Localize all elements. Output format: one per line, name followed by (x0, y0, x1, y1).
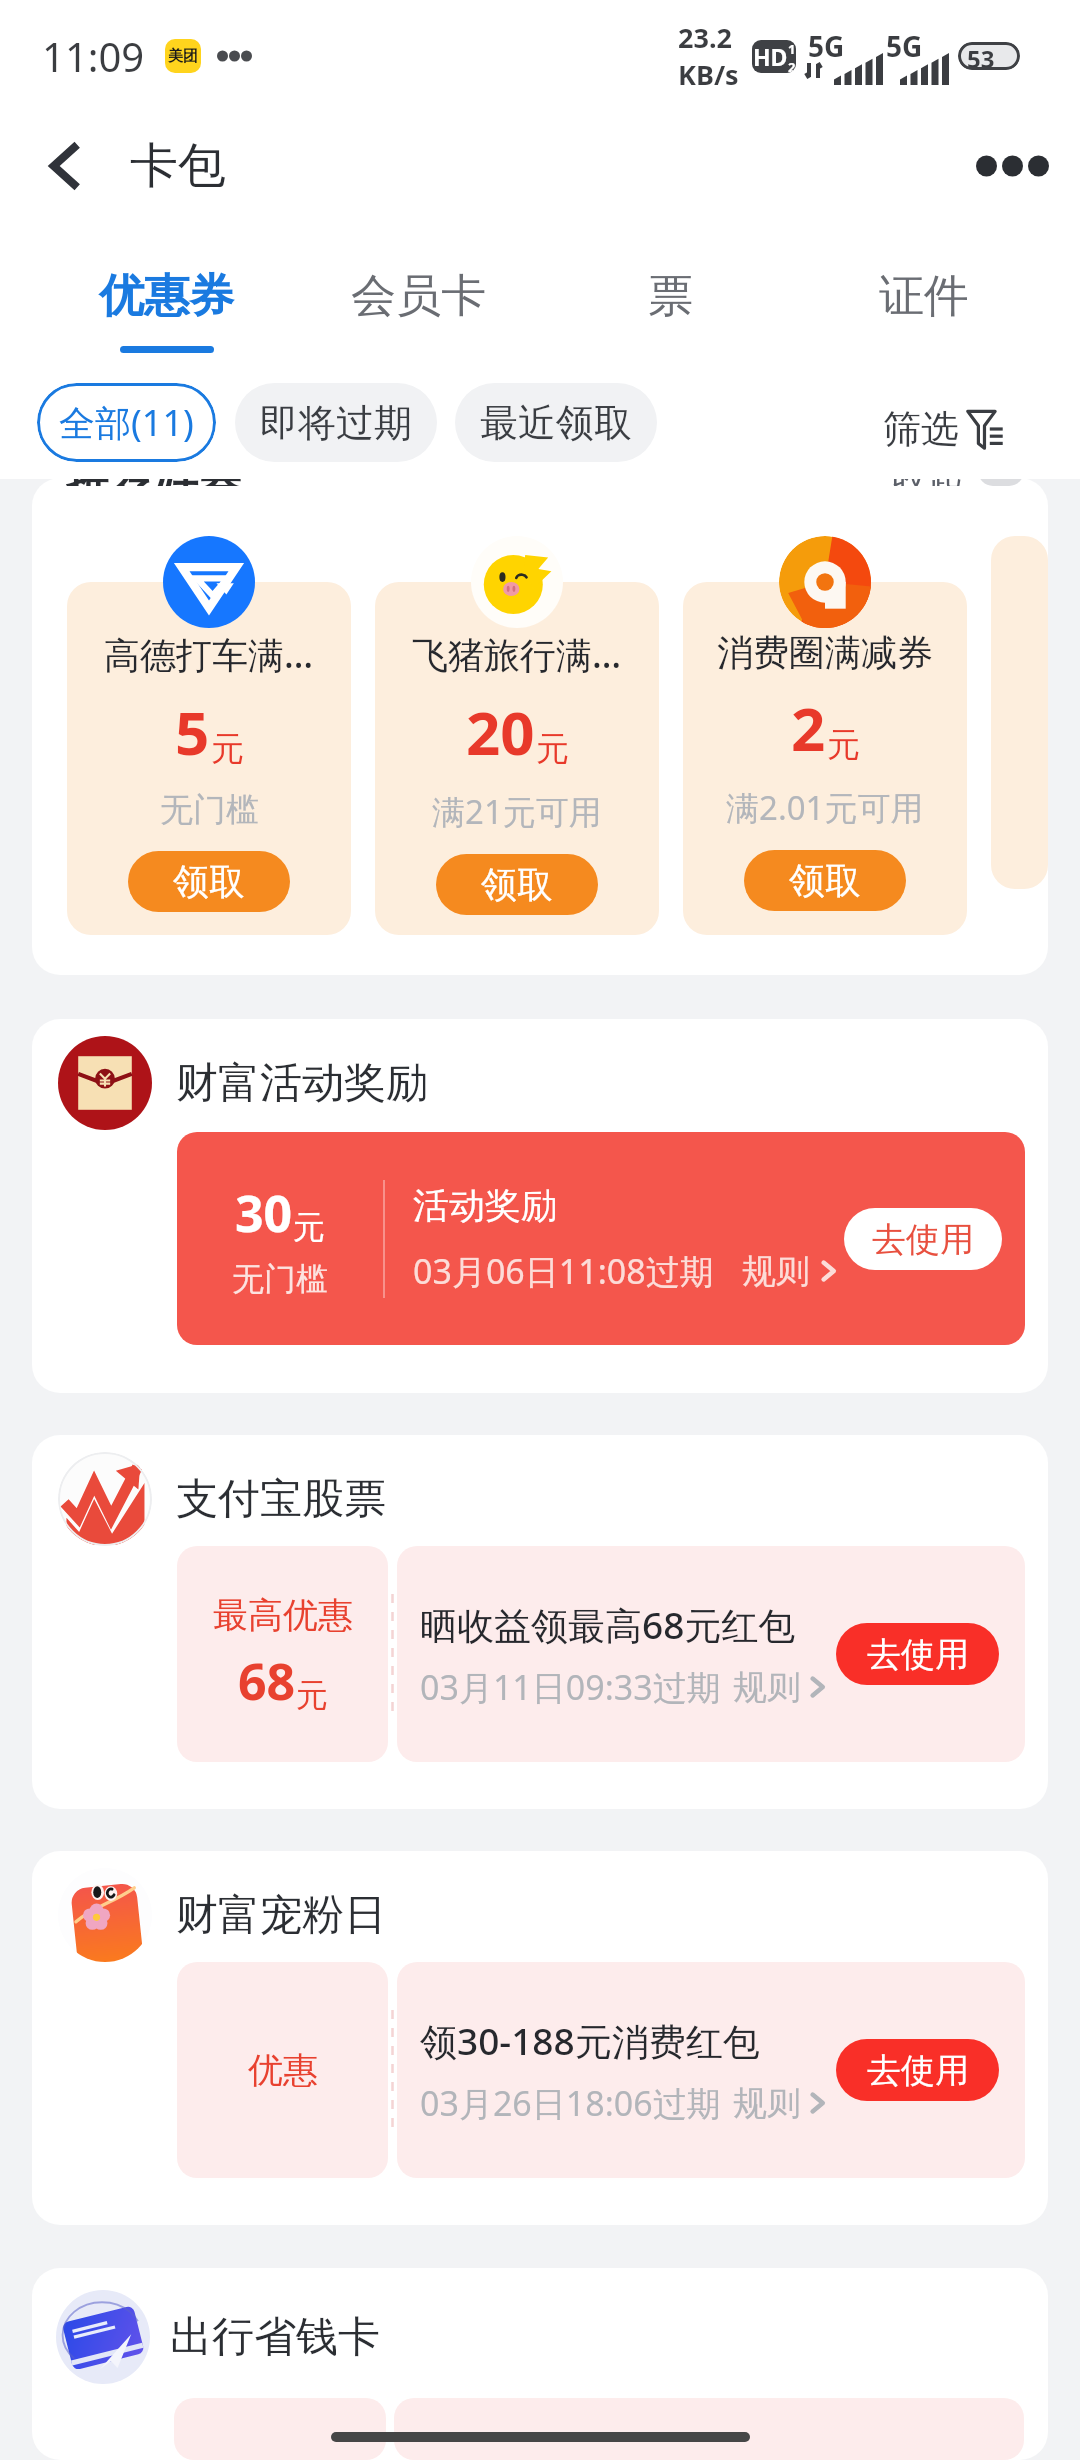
button[interactable]: 支付宝股票 (32, 1435, 1048, 1809)
staticText: 规则 (733, 1666, 801, 1709)
staticText: 推荐好券 (66, 478, 242, 486)
button[interactable]: 票 (544, 220, 797, 366)
staticText: 收起 (892, 478, 964, 486)
button[interactable]: 优惠券 (40, 220, 292, 366)
staticText: 票 (648, 268, 693, 325)
button[interactable]: More options (968, 121, 1058, 211)
staticText: 元 (536, 728, 569, 770)
staticText: 会员卡 (351, 268, 486, 325)
staticText: 即将过期 (260, 399, 412, 447)
button[interactable]: 财富活动奖励 (32, 1019, 1048, 1393)
staticText: 5G (808, 27, 845, 65)
staticText: 规则 (742, 1250, 810, 1293)
button[interactable] (67, 582, 351, 935)
staticText: 出行省钱卡 (170, 2311, 380, 2364)
button[interactable]: 最近领取 (455, 383, 657, 462)
staticText: 规则 (733, 2082, 801, 2125)
staticText: 23.2 (678, 19, 732, 56)
staticText: 优惠 (248, 2048, 318, 2092)
button[interactable]: 财富宠粉日 (32, 1851, 1048, 2225)
button[interactable]: 出行省钱卡 (32, 2268, 1048, 2460)
button[interactable]: 去使用 (836, 2039, 999, 2101)
staticText: 领取 (789, 858, 861, 903)
button[interactable]: Back (26, 126, 106, 206)
staticText: 满2.01元可用 (726, 785, 924, 830)
staticText: 无门槛 (232, 1259, 328, 1299)
staticText: 元 (296, 1675, 328, 1715)
staticText: 53 (967, 42, 995, 70)
staticText: 活动奖励 (413, 1183, 557, 1228)
staticText: 5 (175, 691, 210, 773)
staticText: 支付宝股票 (176, 1473, 386, 1526)
button[interactable]: 去使用 (836, 1623, 999, 1685)
staticText: 元 (293, 1207, 325, 1247)
button[interactable]: 去使用 (844, 1208, 1002, 1270)
staticText: 最高优惠 (213, 1593, 353, 1637)
staticText: 1 (788, 40, 796, 58)
staticText: 全部(11) (59, 398, 194, 447)
button[interactable]: 即将过期 (235, 383, 437, 462)
staticText: 30 (235, 1179, 293, 1247)
staticText: 优惠券 (99, 268, 234, 325)
staticText: 美团 (168, 47, 198, 66)
staticText: 去使用 (872, 1218, 974, 1261)
staticText: 消费圈满减券 (717, 630, 933, 675)
staticText: 20 (466, 691, 535, 773)
staticText: 5G (886, 27, 923, 65)
staticText: 去使用 (867, 2049, 969, 2092)
staticText: 元 (827, 724, 860, 766)
staticText: 财富宠粉日 (176, 1889, 386, 1942)
staticText: 领取 (481, 862, 553, 907)
staticText: 满21元可用 (432, 789, 602, 834)
staticText: 证件 (879, 268, 969, 325)
staticText: 68 (238, 1647, 296, 1715)
button[interactable]: 全部(11) (37, 383, 216, 462)
staticText: 最近领取 (480, 399, 632, 447)
staticText: HD (753, 41, 788, 72)
staticText: 晒收益领最高68元红包 (420, 1599, 796, 1650)
button[interactable]: 领取 (128, 851, 290, 912)
staticText: 财富活动奖励 (176, 1057, 428, 1110)
staticText: 无门槛 (160, 789, 259, 831)
button[interactable]: 筛选 (883, 405, 1005, 453)
staticText: 03月06日11:08过期 (413, 1248, 714, 1294)
staticText: 2 (791, 687, 826, 769)
staticText: 领取 (173, 859, 245, 904)
button[interactable]: 证件 (797, 220, 1050, 366)
staticText: 2 (788, 58, 796, 73)
button[interactable]: 领取 (436, 854, 598, 915)
button[interactable]: 领取 (744, 850, 906, 911)
staticText: 11:09 (42, 29, 145, 83)
staticText: 03月11日09:33过期 (420, 1664, 721, 1710)
staticText: 去使用 (867, 1633, 969, 1676)
staticText: 高德打车满… (104, 630, 314, 679)
staticText: KB/s (678, 56, 739, 93)
staticText: 卡包 (130, 136, 226, 196)
staticText: 领30-188元消费红包 (420, 2015, 760, 2066)
button[interactable] (375, 582, 659, 935)
staticText: 飞猪旅行满… (412, 630, 622, 679)
staticText: 筛选 (883, 405, 959, 453)
staticText: 元 (211, 728, 244, 770)
staticText: 03月26日18:06过期 (420, 2080, 721, 2126)
button[interactable] (683, 582, 967, 935)
button[interactable]: 会员卡 (292, 220, 544, 366)
